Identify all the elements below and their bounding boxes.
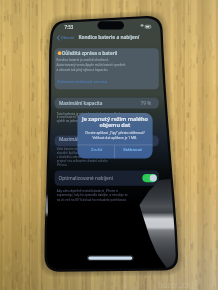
button[interactable]: Stáhnout — [115, 145, 153, 158]
button[interactable]: Zobrazit možnosti servisu — [55, 76, 117, 86]
button[interactable]: Back to Obecné — [56, 33, 80, 43]
button[interactable]: Optimalizované nabíjení — [140, 172, 158, 184]
button[interactable]: Zrušit — [77, 145, 115, 158]
